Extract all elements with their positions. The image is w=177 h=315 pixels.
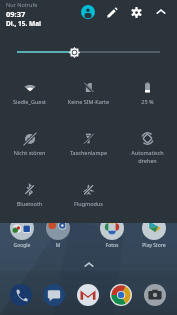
button[interactable]: Nicht stören [0,127,59,178]
staticText: Bluetooth [0,200,59,207]
staticText: 25 % [118,98,177,105]
button[interactable]: Edit [104,4,120,20]
button[interactable]: Bluetooth [0,178,59,229]
staticText: Automatisch drehen [118,149,177,165]
staticText: Play Store [132,242,176,249]
staticText: Google [0,242,44,249]
staticText: Keine SIM-Karte [59,98,118,105]
button[interactable]: Camera [144,284,166,306]
button[interactable]: Play Store [142,216,166,240]
staticText: Di., 15. Mai [6,19,41,28]
staticText: Flugmodus [59,200,118,207]
button[interactable]: All apps [83,259,95,271]
staticText: Nicht stören [0,149,59,156]
button[interactable]: Collapse [153,4,169,20]
staticText: M [36,242,80,249]
button[interactable]: Messages [43,284,65,306]
button[interactable]: M [46,216,70,240]
button[interactable]: Settings [128,4,144,20]
button[interactable]: Keine SIM-Karte [59,76,118,127]
button[interactable]: 25 % [118,76,177,127]
button[interactable]: Taschenlampe [59,127,118,178]
staticText: Taschenlampe [59,149,118,156]
button[interactable]: Fotos [100,216,124,240]
staticText: Siedle_Guest [0,98,59,105]
button[interactable]: Gmail [77,284,99,306]
button[interactable]: User [80,4,96,20]
button[interactable]: Chrome [110,284,132,306]
button[interactable]: Flugmodus [59,178,118,229]
button[interactable]: Google [10,216,34,240]
button[interactable]: Phone [10,284,32,306]
staticText: Fotos [90,242,134,249]
staticText: Nur Notrufe [6,1,38,8]
button[interactable]: Automatisch drehen [118,127,177,178]
button[interactable]: Brightness [68,46,80,58]
staticText: 09:37 [6,9,26,19]
button[interactable]: Siedle_Guest [0,76,59,127]
